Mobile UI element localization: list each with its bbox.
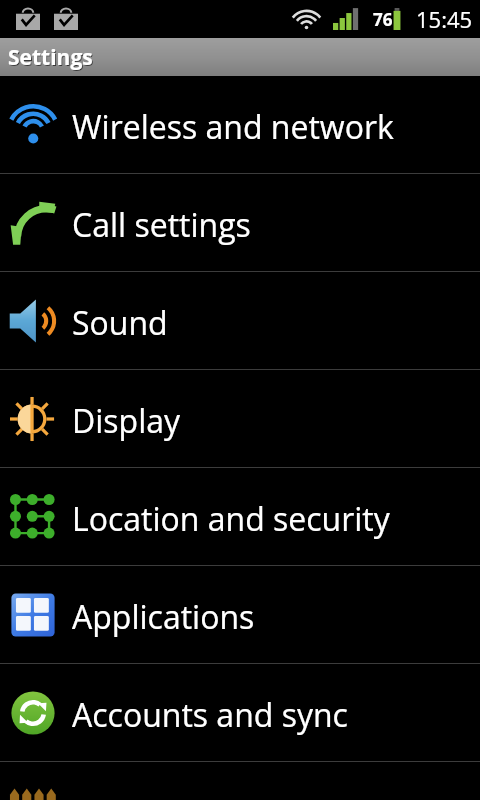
button[interactable]: Accounts and sync bbox=[0, 664, 480, 761]
staticText: Wireless and network bbox=[72, 105, 394, 149]
button[interactable]: Call settings bbox=[0, 174, 480, 271]
button[interactable]: Notifications bbox=[16, 8, 78, 30]
staticText: 15:45 bbox=[416, 4, 473, 34]
button[interactable]: Sound bbox=[0, 272, 480, 369]
button[interactable]: Location and security bbox=[0, 468, 480, 565]
button[interactable]: Privacy bbox=[0, 762, 480, 800]
button[interactable]: Display bbox=[0, 370, 480, 467]
button[interactable]: Applications bbox=[0, 566, 480, 663]
staticText: Call settings bbox=[72, 203, 251, 247]
button[interactable]: Wireless and network bbox=[0, 76, 480, 173]
staticText: Settings bbox=[8, 43, 93, 72]
staticText: Location and security bbox=[72, 497, 390, 541]
staticText: Sound bbox=[72, 301, 168, 345]
staticText: Settings bbox=[9, 44, 94, 73]
other: Status bar bbox=[0, 0, 480, 38]
staticText: Accounts and sync bbox=[72, 693, 348, 737]
staticText: Display bbox=[72, 399, 181, 443]
staticText: Applications bbox=[72, 595, 255, 639]
staticText: 76 bbox=[373, 8, 393, 31]
